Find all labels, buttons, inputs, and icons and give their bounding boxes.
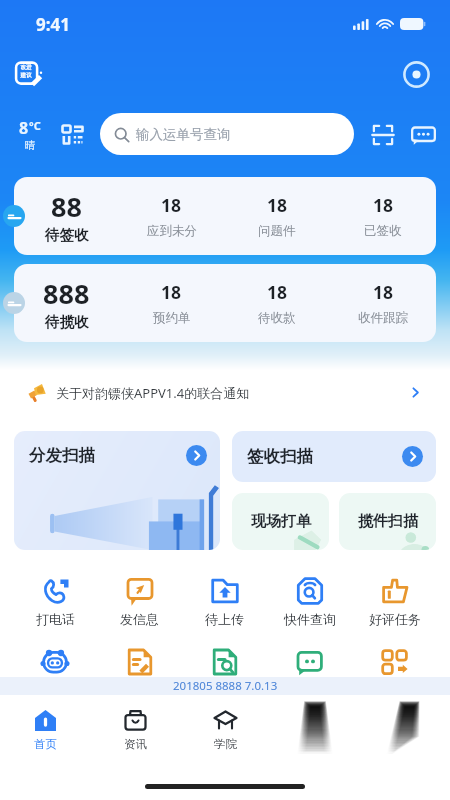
button[interactable]: 揽件扫描 bbox=[339, 493, 436, 550]
staticText: 发信息 bbox=[120, 611, 159, 627]
button[interactable]: 扫描 bbox=[370, 122, 395, 147]
staticText: 签收扫描 bbox=[247, 446, 313, 467]
button[interactable]: 888 bbox=[14, 264, 436, 342]
button[interactable]: 收起 bbox=[3, 292, 25, 314]
staticText: 现场打单 bbox=[251, 512, 311, 531]
staticText: 201805 8888 7.0.13 bbox=[173, 678, 278, 694]
button[interactable]: 资讯 bbox=[90, 701, 180, 757]
staticText: 预约单 bbox=[153, 310, 191, 326]
staticText: 已签收 bbox=[364, 223, 402, 239]
staticText: 学院 bbox=[214, 737, 237, 751]
button[interactable]: 改进建议 bbox=[12, 57, 46, 91]
button[interactable]: 包裹查询 bbox=[182, 647, 267, 677]
button[interactable]: 设置 bbox=[360, 701, 450, 757]
button[interactable]: 机器人 bbox=[13, 647, 97, 677]
staticText: 88 bbox=[51, 188, 82, 225]
staticText: 首页 bbox=[34, 737, 57, 751]
staticText: 揽件扫描 bbox=[358, 512, 418, 531]
staticText: 待签收 bbox=[45, 226, 89, 244]
button[interactable]: 消息 bbox=[267, 647, 352, 677]
staticText: 18 bbox=[373, 280, 394, 304]
staticText: °C bbox=[29, 118, 41, 133]
staticText: 输入运单号查询 bbox=[136, 126, 231, 143]
staticText: 888 bbox=[43, 275, 90, 312]
button[interactable]: 更多 bbox=[352, 647, 437, 677]
staticText: 关于对韵镖侠APPV1.4的联合通知 bbox=[56, 384, 408, 402]
button[interactable]: 关于对韵镖侠APPV1.4的联合通知 bbox=[14, 372, 436, 413]
staticText: 打电话 bbox=[36, 611, 75, 627]
staticText: 待收款 bbox=[258, 310, 296, 326]
staticText: 分发扫描 bbox=[29, 445, 95, 466]
staticText: 18 bbox=[267, 280, 288, 304]
button[interactable]: 88 bbox=[14, 177, 436, 255]
staticText: 18 bbox=[161, 280, 182, 304]
button[interactable]: 定位 bbox=[399, 57, 433, 91]
staticText: 收件跟踪 bbox=[358, 310, 408, 326]
button[interactable]: 打电话 bbox=[13, 576, 97, 627]
button[interactable]: 扫码 bbox=[59, 121, 86, 148]
button[interactable]: 分发扫描 bbox=[14, 431, 220, 550]
staticText: 晴 bbox=[25, 139, 36, 152]
button[interactable]: 发信息 bbox=[97, 576, 182, 627]
staticText: 9:41 bbox=[36, 13, 70, 36]
staticText: 快件查询 bbox=[284, 611, 336, 627]
button[interactable]: 学院 bbox=[180, 701, 270, 757]
button[interactable]: 签收扫描 bbox=[232, 431, 436, 482]
staticText: 待上传 bbox=[205, 611, 244, 627]
button[interactable]: 消息 bbox=[409, 120, 437, 148]
staticText: 应到未分 bbox=[147, 223, 197, 239]
staticText: 问题件 bbox=[258, 223, 296, 239]
button[interactable]: 现场打单 bbox=[232, 493, 329, 550]
staticText: 18 bbox=[373, 193, 394, 217]
staticText: 改进 建议 bbox=[17, 64, 35, 78]
staticText: 待揽收 bbox=[45, 313, 89, 331]
staticText: 资讯 bbox=[124, 737, 147, 751]
button[interactable]: 工单 bbox=[97, 647, 182, 677]
button[interactable]: 首页 bbox=[0, 701, 90, 757]
button[interactable]: 好评任务 bbox=[352, 576, 437, 627]
button[interactable]: 收起 bbox=[3, 205, 25, 227]
button[interactable]: 快件查询 bbox=[267, 576, 352, 627]
button[interactable]: 8 bbox=[14, 117, 46, 152]
staticText: 18 bbox=[161, 193, 182, 217]
staticText: 18 bbox=[267, 193, 288, 217]
staticText: 好评任务 bbox=[369, 611, 421, 627]
button[interactable]: 我的 bbox=[270, 701, 360, 757]
staticText: 8 bbox=[19, 117, 29, 139]
button[interactable]: 待上传 bbox=[182, 576, 267, 627]
button[interactable]: 输入运单号查询 bbox=[100, 113, 354, 155]
